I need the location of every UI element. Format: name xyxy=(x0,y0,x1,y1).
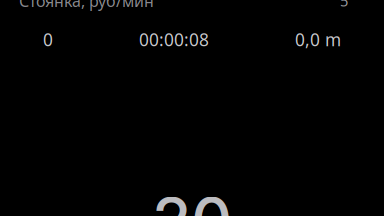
staticText: 0,0 m xyxy=(295,28,341,51)
staticText: 5 xyxy=(340,0,348,11)
button[interactable]: 00:00:08 xyxy=(96,28,252,51)
staticText: Стоянка, руб/мин xyxy=(19,0,154,12)
button[interactable]: 0,0 m xyxy=(252,28,384,51)
button[interactable]: Стоянка, руб/мин xyxy=(0,0,384,12)
staticText: 00:00:08 xyxy=(139,28,209,51)
staticText: 0 xyxy=(43,28,53,51)
staticText: 20 xyxy=(152,183,232,216)
button[interactable]: 0 xyxy=(0,28,96,51)
